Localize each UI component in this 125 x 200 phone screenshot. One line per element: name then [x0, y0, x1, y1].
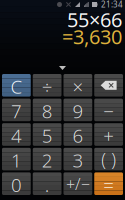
staticText: 7 — [11, 99, 22, 121]
staticText: 55×66 — [67, 6, 122, 33]
button[interactable]: 7 — [2, 99, 31, 121]
staticText: =3,630 — [62, 23, 122, 50]
staticText: . — [45, 172, 50, 195]
staticText: = — [103, 172, 114, 195]
staticText: − — [103, 99, 114, 121]
staticText: C — [10, 74, 22, 97]
staticText: 8 — [42, 99, 53, 121]
staticText: ( ) — [101, 148, 116, 170]
button[interactable]: − — [94, 99, 123, 121]
button[interactable]: 9 — [63, 99, 92, 121]
button[interactable]: 5 — [33, 123, 62, 146]
button[interactable]: = — [94, 172, 123, 195]
button[interactable]: + — [94, 123, 123, 146]
staticText: 1 — [11, 148, 22, 170]
button[interactable]: ( ) — [94, 148, 123, 170]
button[interactable]: 0 — [2, 172, 31, 195]
staticText: 0 — [11, 172, 22, 195]
button[interactable]: 1 — [2, 148, 31, 170]
staticText: 3 — [72, 148, 83, 170]
staticText: ÷ — [42, 74, 53, 97]
staticText: 2 — [42, 148, 53, 170]
staticText: × — [72, 74, 83, 97]
staticText: + — [103, 123, 114, 146]
button[interactable]: × — [63, 74, 92, 97]
staticText: 6 — [72, 123, 83, 146]
button[interactable]: 6 — [63, 123, 92, 146]
staticText: 21:34 — [101, 0, 123, 10]
button[interactable]: 8 — [33, 99, 62, 121]
button[interactable]: C — [2, 74, 31, 97]
button[interactable]: 3 — [63, 148, 92, 170]
staticText: 4 — [11, 123, 22, 146]
button[interactable]: Backspace — [94, 74, 123, 97]
staticText: +/− — [66, 173, 90, 194]
button[interactable]: +/− — [63, 172, 92, 195]
button[interactable]: . — [33, 172, 62, 195]
staticText: 9 — [72, 99, 83, 121]
button[interactable]: Show history — [56, 63, 69, 73]
button[interactable]: 2 — [33, 148, 62, 170]
staticText: 5 — [42, 123, 53, 146]
button[interactable]: 4 — [2, 123, 31, 146]
button[interactable]: ÷ — [33, 74, 62, 97]
